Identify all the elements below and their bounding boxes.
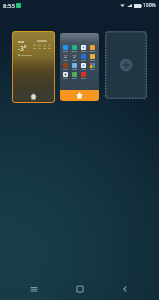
button[interactable]: Back [113, 278, 137, 300]
button[interactable]: Home [68, 278, 92, 300]
staticText: -3° [18, 44, 27, 53]
staticText: 8:55 [3, 2, 15, 10]
button[interactable]: Recent apps [22, 278, 46, 300]
staticText: 100% [143, 2, 156, 9]
button[interactable]: Add home screen page [105, 31, 147, 99]
button[interactable] [60, 33, 99, 101]
button[interactable]: -3° [12, 31, 55, 103]
